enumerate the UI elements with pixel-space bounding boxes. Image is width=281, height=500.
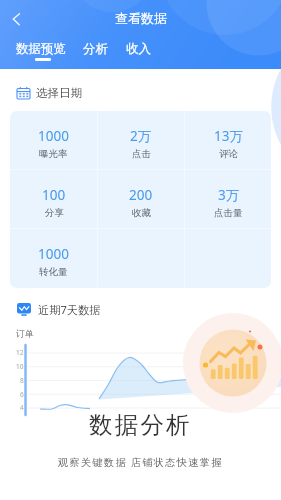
staticText: 分析 [83, 41, 108, 57]
staticText: 3万 [218, 186, 240, 204]
staticText: 数据分析 [89, 410, 192, 440]
staticText: 数据预览 [16, 41, 66, 57]
staticText: 12 [16, 348, 24, 357]
staticText: 200 [129, 186, 153, 204]
staticText: 曝光率 [39, 148, 68, 160]
staticText: 4 [20, 403, 24, 412]
button[interactable]: 收入 [126, 41, 151, 61]
button[interactable]: 100 [42, 183, 66, 216]
staticText: 点击 [132, 148, 151, 160]
button[interactable]: 3万 [214, 183, 243, 216]
staticText: 收藏 [132, 207, 151, 219]
staticText: 100 [42, 186, 66, 204]
staticText: 点击量 [214, 207, 243, 219]
staticText: 8 [20, 376, 24, 385]
staticText: 6 [20, 390, 24, 399]
staticText: 收入 [126, 41, 151, 57]
staticText: 转化量 [39, 266, 68, 278]
staticText: 观察关键数据 店铺状态快速掌握 [58, 455, 223, 469]
staticText: 评论 [219, 148, 238, 160]
button[interactable]: 2万 [130, 124, 152, 157]
button[interactable]: 13万 [214, 124, 243, 157]
button[interactable]: 数据预览 [16, 41, 66, 61]
staticText: 1000 [38, 127, 69, 145]
button[interactable]: 1000 [38, 124, 69, 157]
staticText: 分享 [45, 207, 64, 219]
staticText: 查看数据 [115, 10, 167, 26]
staticText: 订单 [16, 328, 34, 339]
staticText: 10 [16, 362, 24, 371]
staticText: 近期7天数据 [38, 302, 101, 317]
staticText: 选择日期 [36, 86, 82, 100]
button[interactable]: 200 [129, 183, 153, 216]
button[interactable]: 1000 [38, 242, 69, 275]
staticText: 1000 [38, 245, 69, 263]
button[interactable]: 选择日期 [17, 86, 82, 100]
button[interactable]: Back [0, 5, 26, 33]
staticText: 2万 [130, 127, 152, 145]
staticText: 13万 [214, 127, 243, 145]
button[interactable]: 分析 [83, 41, 108, 61]
